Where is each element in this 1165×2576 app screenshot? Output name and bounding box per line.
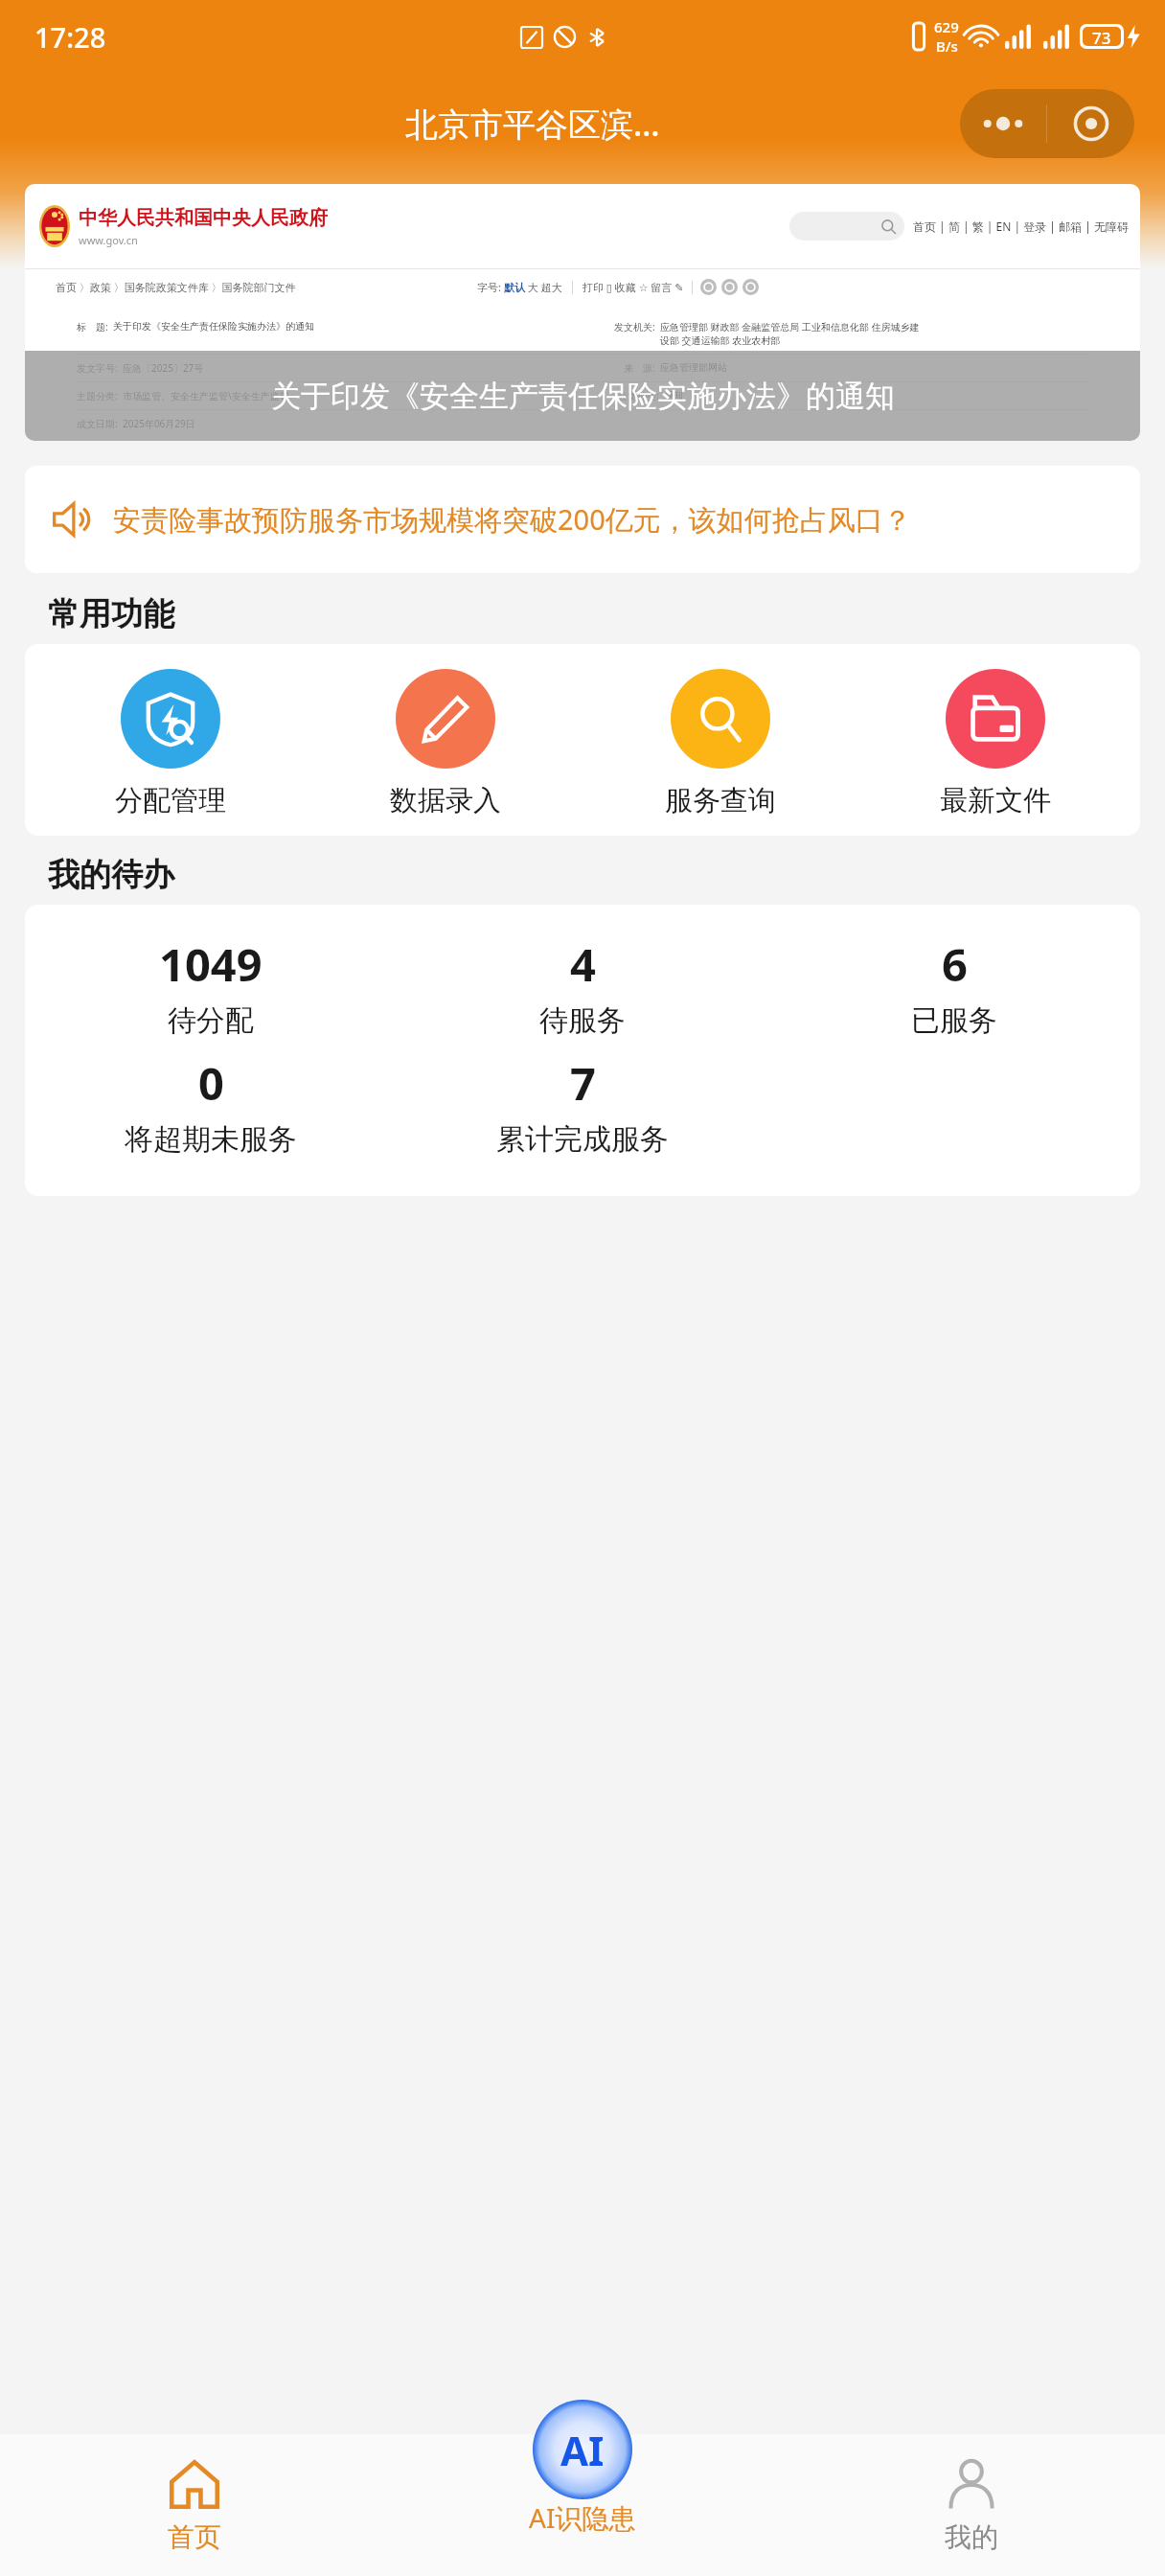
button[interactable]: 安责险事故预防服务市场规模将突破200亿元，该如何抢占风口？ [25, 466, 1140, 573]
button[interactable]: More [960, 89, 1046, 158]
staticText: 发文字号: [77, 361, 118, 375]
button[interactable]: Close [1047, 89, 1134, 158]
staticText: 发文机关: [614, 320, 655, 333]
staticText: 关于印发《安全生产责任保险实施办法》的通知 [271, 378, 895, 415]
button[interactable]: 分配管理 [33, 644, 308, 836]
button[interactable]: 我的 [777, 2434, 1165, 2576]
staticText: 应急管理部 财政部 金融监管总局 工业和信息化部 住房城乡建 设部 交通运输部 … [660, 320, 1088, 347]
button[interactable]: 0 [25, 1052, 397, 1158]
staticText: 2025年06月29日 [123, 417, 632, 430]
staticText: 北京市平谷区滨… [405, 102, 660, 146]
staticText: www.gov.cn [79, 233, 138, 247]
staticText: 6 [942, 933, 968, 995]
button[interactable]: 1049 [25, 933, 397, 1039]
staticText: 字号: [477, 280, 504, 294]
button[interactable]: AI [529, 2398, 636, 2538]
staticText: 首页 | 简 | 繁 | EN | 登录 | 邮箱 | 无障碍 [913, 218, 1129, 234]
staticText: 常用功能 [48, 594, 174, 634]
staticText: 我的 [945, 2520, 998, 2554]
staticText: 待服务 [539, 1002, 626, 1039]
staticText: 将超期未服务 [125, 1121, 297, 1158]
staticText: AI [560, 2423, 605, 2477]
button[interactable]: 首页 [0, 2434, 389, 2576]
staticText: 数据录入 [390, 783, 501, 818]
staticText: 累计完成服务 [496, 1121, 669, 1158]
staticText: 来 源: [624, 361, 655, 375]
staticText: 打印 ▯ 收藏 ☆ 留言 ✎ [582, 280, 684, 294]
staticText: 首页 [168, 2520, 221, 2554]
button[interactable]: 数据录入 [308, 644, 582, 836]
staticText: 大 超大 [525, 280, 562, 294]
staticText: 主题分类: [77, 389, 118, 402]
staticText: AI识隐患 [529, 2499, 636, 2536]
staticText: 默认 [504, 281, 525, 294]
staticText: 安责险事故预防服务市场规模将突破200亿元，该如何抢占风口？ [113, 500, 911, 539]
staticText: 关于印发《安全生产责任保险实施办法》的通知 [113, 320, 606, 333]
button[interactable]: 4 [397, 933, 768, 1039]
staticText: 成文日期: [77, 417, 118, 430]
staticText: 市场监管、安全生产监管\安全生产监管 [123, 389, 610, 402]
staticText: 4 [570, 933, 596, 995]
staticText: 7 [570, 1052, 596, 1114]
staticText: 通知 [664, 389, 1088, 402]
staticText: 629 [934, 17, 959, 36]
staticText: 公文种类: [618, 389, 659, 402]
button[interactable]: 服务查询 [582, 644, 857, 836]
staticText: 服务查询 [665, 783, 776, 818]
staticText: 0 [198, 1052, 224, 1114]
staticText: 标 题: [77, 320, 108, 333]
staticText: 1049 [159, 933, 263, 995]
staticText: 17:28 [34, 18, 106, 56]
staticText: 应急管理部网站 [660, 361, 1088, 374]
staticText: 73 [1092, 27, 1111, 46]
button[interactable]: 6 [768, 933, 1140, 1039]
button[interactable]: 最新文件 [857, 644, 1132, 836]
staticText: 首页 〉政策 〉国务院政策文件库 〉国务院部门文件 [56, 280, 296, 294]
staticText: 最新文件 [940, 783, 1051, 818]
staticText: 待分配 [168, 1002, 254, 1039]
staticText: 分配管理 [115, 783, 226, 818]
button[interactable]: More [960, 89, 1134, 158]
staticText: 中华人民共和国中央人民政府 [79, 206, 328, 230]
staticText: B/s [936, 36, 958, 56]
button[interactable]: 中华人民共和国中央人民政府 [25, 184, 1140, 441]
staticText: 已服务 [911, 1002, 997, 1039]
staticText: 我的待办 [48, 855, 174, 895]
button[interactable]: 7 [397, 1052, 768, 1158]
staticText: 应急〔2025〕27号 [123, 361, 616, 375]
